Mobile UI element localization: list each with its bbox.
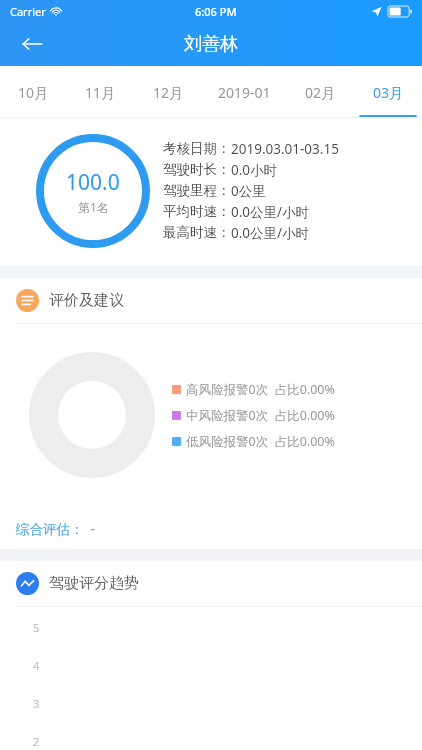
staticText: 2019.03.01-03.15 — [231, 140, 339, 158]
staticText: 3 — [33, 696, 40, 711]
button[interactable]: 11月 — [67, 66, 134, 118]
staticText: 驾驶时长： — [163, 161, 231, 178]
button[interactable]: 02月 — [286, 66, 354, 118]
staticText: 综合评估： - — [16, 520, 95, 538]
staticText: 03月 — [373, 83, 404, 102]
staticText: 平均时速： — [163, 203, 231, 220]
staticText: 4 — [33, 658, 40, 673]
button[interactable]: 03月 — [354, 66, 422, 118]
staticText: 第1名 — [78, 199, 109, 215]
staticText: Carrier — [10, 4, 46, 19]
staticText: 10月 — [18, 83, 49, 102]
staticText: 0.0公里/小时 — [231, 203, 310, 221]
button[interactable]: 2019-01 — [202, 66, 286, 118]
staticText: 0.0小时 — [231, 161, 278, 179]
staticText: 驾驶里程： — [163, 182, 231, 199]
staticText: 100.0 — [66, 168, 120, 197]
staticText: 11月 — [85, 83, 116, 102]
staticText: 6:06 PM — [195, 4, 237, 19]
staticText: 中风险报警0次 占比0.00% — [186, 407, 335, 424]
staticText: 0.0公里/小时 — [231, 224, 310, 242]
staticText: 2019-01 — [218, 83, 271, 102]
staticText: 低风险报警0次 占比0.00% — [186, 433, 335, 450]
staticText: 2 — [33, 734, 40, 749]
staticText: 最高时速： — [163, 224, 231, 241]
staticText: 驾驶评分趋势 — [49, 574, 139, 593]
button[interactable]: 10月 — [0, 66, 67, 118]
staticText: 02月 — [305, 83, 336, 102]
staticText: 考核日期： — [163, 140, 231, 157]
staticText: 刘善林 — [184, 33, 238, 56]
button[interactable]: 驾驶评分趋势 — [16, 561, 422, 606]
staticText: 高风险报警0次 占比0.00% — [186, 381, 335, 398]
button[interactable]: 评价及建议 — [16, 278, 422, 323]
staticText: 0公里 — [231, 182, 266, 200]
staticText: 评价及建议 — [49, 291, 124, 310]
staticText: 12月 — [153, 83, 184, 102]
staticText: 5 — [33, 620, 40, 635]
button[interactable]: 12月 — [134, 66, 202, 118]
button[interactable]: Back — [14, 26, 50, 62]
